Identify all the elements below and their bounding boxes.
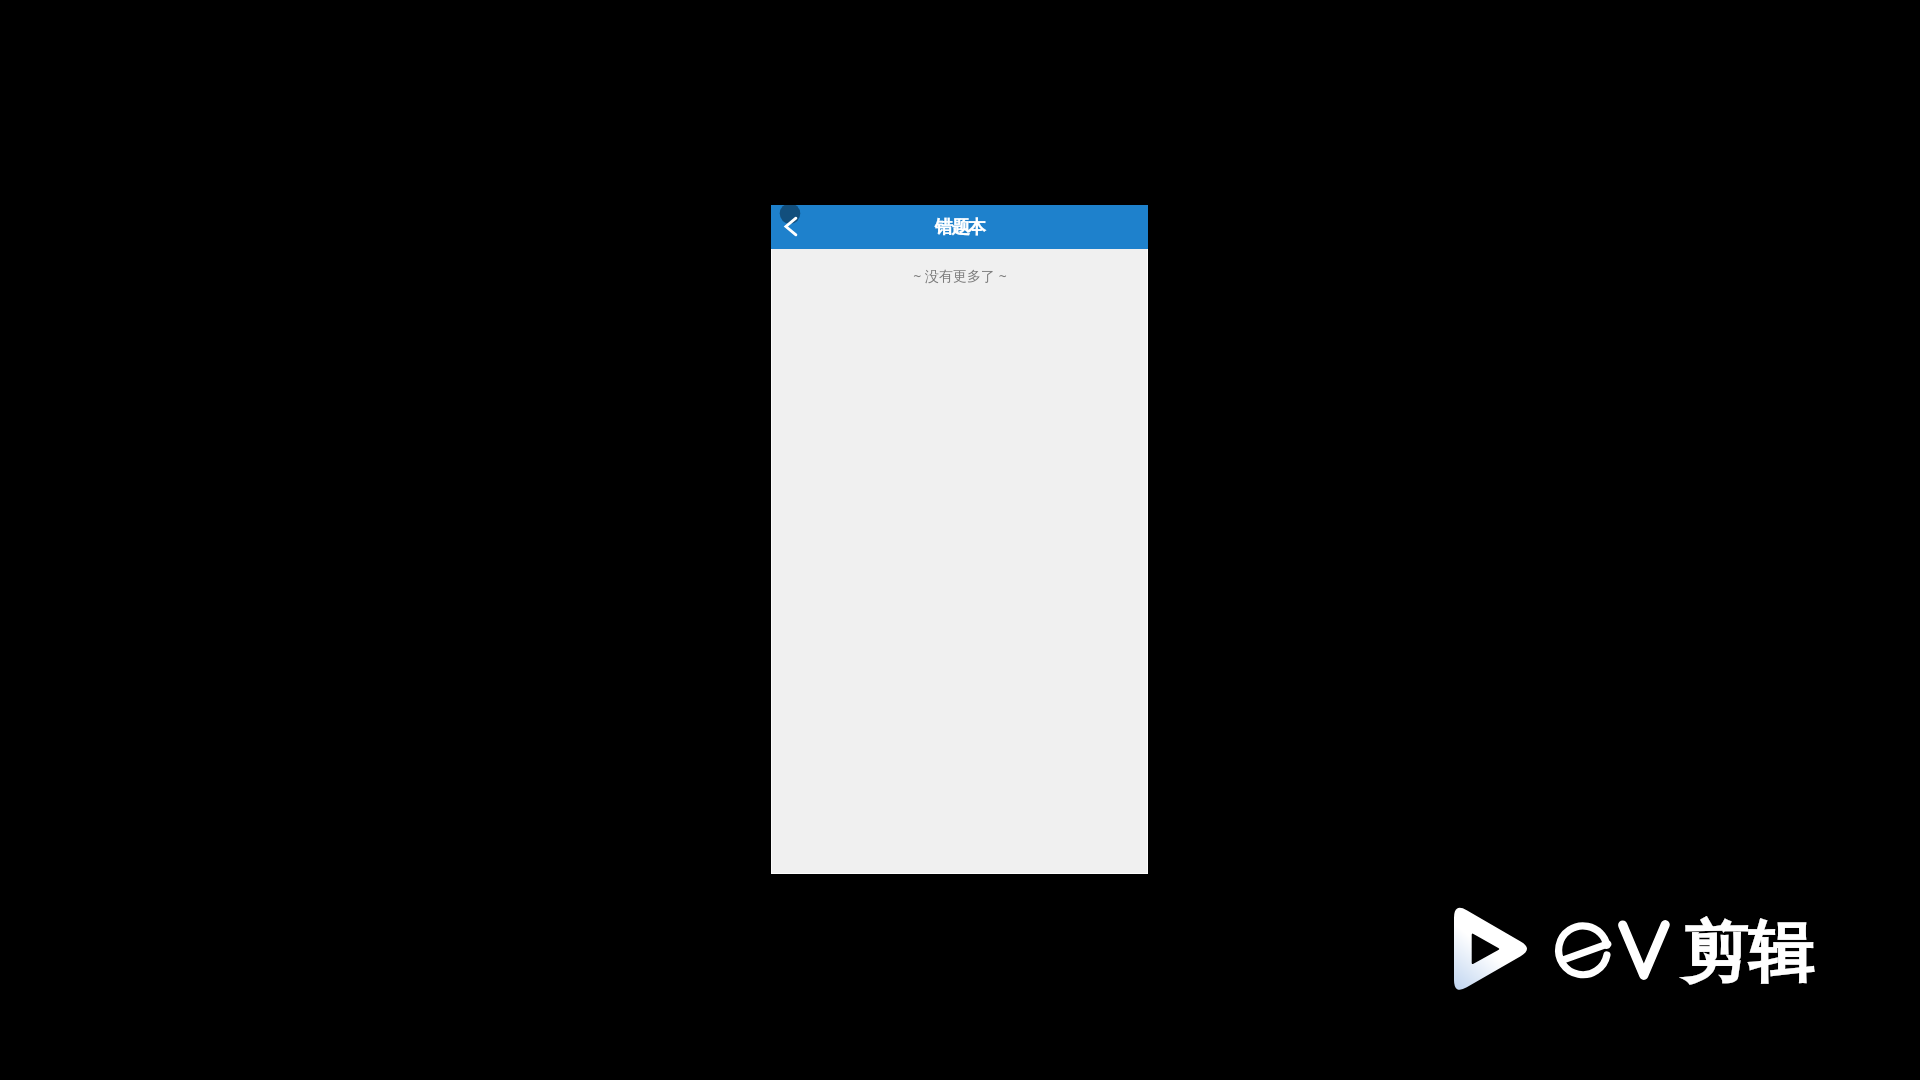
staticText: 错题本 — [935, 216, 985, 239]
staticText: 剪辑 — [1682, 911, 1814, 994]
button[interactable]: Back — [771, 205, 813, 249]
staticText: ~ 没有更多了 ~ — [913, 266, 1007, 285]
